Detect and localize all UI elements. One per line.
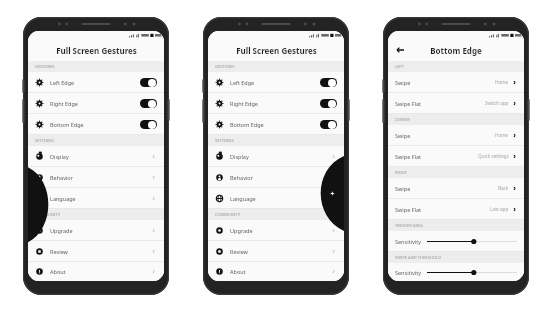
staticText: RIGHT (395, 170, 408, 175)
button[interactable]: Review (28, 241, 164, 261)
staticText: Display (50, 153, 151, 160)
staticText: Review (50, 248, 151, 255)
button[interactable]: Back (393, 43, 407, 57)
button[interactable]: About (208, 262, 344, 281)
button[interactable]: Swipe Flat (388, 146, 524, 166)
staticText: Swipe (395, 185, 411, 192)
button[interactable]: Display (208, 146, 344, 166)
staticText: About (50, 268, 151, 275)
button[interactable]: Swipe (388, 125, 524, 145)
staticText: Back (498, 185, 509, 191)
staticText: Bottom Edge (430, 45, 482, 56)
staticText: Last app (490, 206, 509, 212)
button[interactable] (320, 78, 337, 87)
staticText: Quick settings (478, 153, 509, 159)
staticText: Bottom Edge (230, 121, 320, 128)
staticText: Review (230, 248, 331, 255)
staticText: SETTINGS (35, 138, 54, 143)
staticText: Behavior (50, 174, 151, 181)
button[interactable]: Language (28, 188, 164, 208)
staticText: Left Edge (230, 79, 320, 86)
button[interactable]: Upgrade (208, 220, 344, 240)
staticText: GESTURES (35, 64, 55, 69)
staticText: SWIPE AND THRESHOLD (395, 255, 442, 260)
staticText: Swipe Flat (395, 100, 422, 107)
staticText: COMMUNITY (215, 212, 240, 217)
button[interactable] (140, 78, 157, 87)
button[interactable]: Swipe (388, 178, 524, 198)
button[interactable]: Sensitivity (388, 263, 524, 281)
staticText: Upgrade (230, 227, 331, 234)
staticText: Right Edge (230, 100, 320, 107)
button[interactable]: Swipe (388, 72, 524, 92)
button[interactable] (320, 99, 337, 108)
staticText: Language (50, 195, 151, 202)
staticText: Swipe (395, 79, 411, 86)
staticText: Home (495, 79, 509, 85)
staticText: Right Edge (50, 100, 140, 107)
button[interactable]: Left Edge (28, 72, 164, 92)
staticText: Behavior (230, 174, 331, 181)
staticText: Bottom Edge (50, 121, 140, 128)
button[interactable]: Bottom Edge (208, 114, 344, 134)
button[interactable]: Review (208, 241, 344, 261)
staticText: CENTER (395, 117, 410, 122)
staticText: Swipe Flat (395, 153, 422, 160)
button[interactable]: Swipe Flat (388, 199, 524, 219)
button[interactable]: Upgrade (28, 220, 164, 240)
button[interactable]: Right Edge (28, 93, 164, 113)
staticText: TRIGGER AREA (395, 223, 423, 228)
button[interactable]: Bottom Edge (28, 114, 164, 134)
button[interactable]: Swipe Flat (388, 93, 524, 113)
button[interactable] (320, 120, 337, 129)
button[interactable] (140, 99, 157, 108)
button[interactable] (140, 120, 157, 129)
staticText: Swipe (395, 132, 411, 139)
staticText: Full Screen Gestures (236, 45, 317, 56)
button[interactable]: Behavior (28, 167, 164, 187)
staticText: LEFT (395, 64, 404, 69)
staticText: Full Screen Gestures (56, 45, 137, 56)
button[interactable]: Sensitivity (388, 231, 524, 251)
staticText: COMMUNITY (35, 212, 60, 217)
staticText: Sensitivity (395, 269, 421, 276)
staticText: About (230, 268, 331, 275)
button[interactable]: Behavior (208, 167, 344, 187)
staticText: Home (495, 132, 509, 138)
staticText: GESTURES (215, 64, 235, 69)
staticText: Swipe Flat (395, 206, 422, 213)
button[interactable]: Language (208, 188, 344, 208)
button[interactable]: Right Edge (208, 93, 344, 113)
staticText: SETTINGS (215, 138, 234, 143)
staticText: Sensitivity (395, 238, 421, 245)
staticText: Display (230, 153, 331, 160)
staticText: Left Edge (50, 79, 140, 86)
button[interactable]: Display (28, 146, 164, 166)
button[interactable]: Left Edge (208, 72, 344, 92)
button[interactable]: About (28, 262, 164, 281)
staticText: Upgrade (50, 227, 151, 234)
staticText: Switch app (485, 100, 509, 106)
staticText: Language (230, 195, 331, 202)
